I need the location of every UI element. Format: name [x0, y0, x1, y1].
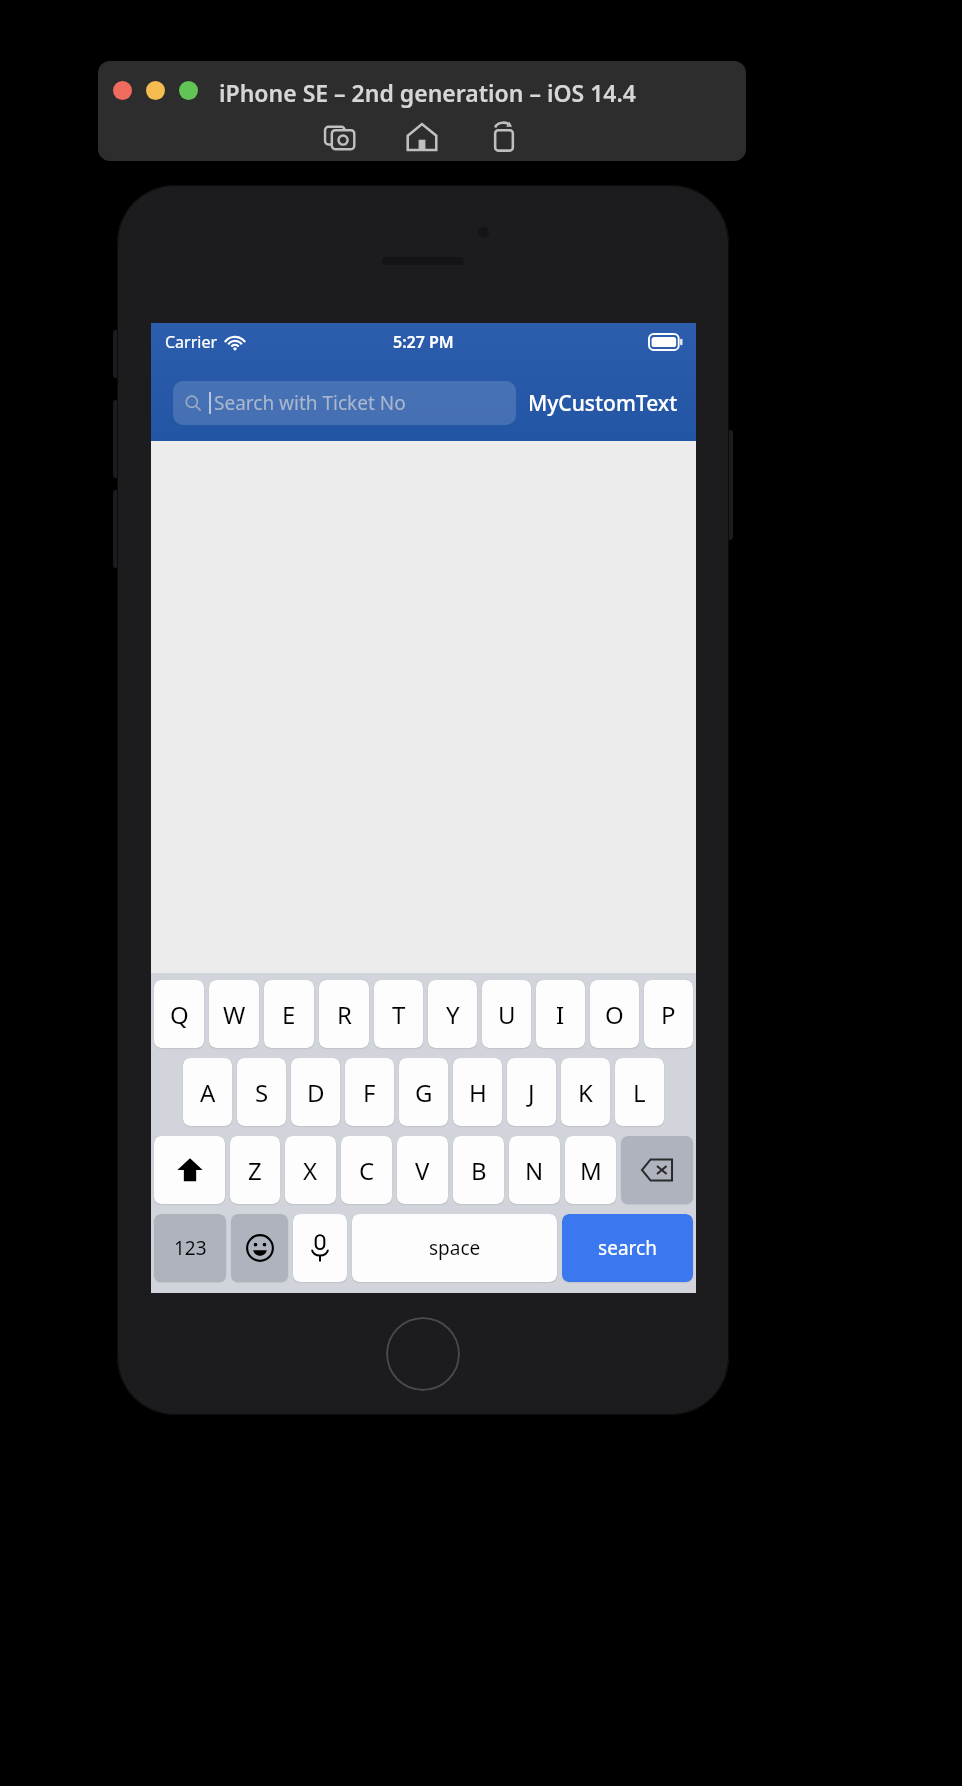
staticText: 5:27 PM — [393, 331, 454, 353]
button[interactable]: T — [374, 980, 423, 1048]
staticText: Q — [170, 998, 189, 1031]
button[interactable]: Minimize — [146, 81, 165, 100]
staticText: search — [598, 1235, 657, 1261]
button[interactable]: M — [565, 1136, 616, 1204]
staticText: S — [255, 1076, 269, 1109]
button[interactable]: Shift — [154, 1136, 225, 1204]
staticText: J — [528, 1076, 535, 1109]
button[interactable]: P — [644, 980, 693, 1048]
button[interactable]: Home — [400, 115, 444, 159]
button[interactable]: Zoom — [179, 81, 198, 100]
staticText: F — [363, 1076, 376, 1109]
button[interactable]: 123 — [154, 1214, 226, 1282]
staticText: MyCustomText — [528, 389, 678, 418]
staticText: M — [580, 1154, 602, 1187]
button[interactable]: Y — [428, 980, 477, 1048]
button[interactable]: X — [285, 1136, 336, 1204]
button[interactable]: space — [352, 1214, 557, 1282]
staticText: space — [429, 1235, 481, 1261]
staticText: P — [661, 998, 676, 1031]
staticText: E — [282, 998, 296, 1031]
button[interactable]: D — [291, 1058, 340, 1126]
staticText: X — [303, 1154, 318, 1187]
button[interactable]: A — [183, 1058, 232, 1126]
staticText: C — [359, 1154, 375, 1187]
button[interactable]: Rotate — [482, 115, 526, 159]
staticText: A — [200, 1076, 216, 1109]
staticText: L — [633, 1076, 646, 1109]
staticText: Carrier — [165, 331, 218, 353]
staticText: T — [392, 998, 406, 1031]
button[interactable]: G — [399, 1058, 448, 1126]
staticText: W — [223, 998, 246, 1031]
button[interactable]: L — [615, 1058, 664, 1126]
staticText: D — [307, 1076, 325, 1109]
button[interactable]: Search with Ticket No — [173, 381, 516, 425]
button[interactable]: Home button — [386, 1317, 460, 1391]
button[interactable]: R — [319, 980, 369, 1048]
button[interactable]: I — [536, 980, 585, 1048]
button[interactable]: J — [507, 1058, 556, 1126]
button[interactable]: W — [209, 980, 259, 1048]
staticText: iPhone SE – 2nd generation – iOS 14.4 — [219, 77, 636, 108]
staticText: U — [498, 998, 516, 1031]
button[interactable]: Q — [154, 980, 204, 1048]
button[interactable]: Close — [113, 81, 132, 100]
button[interactable]: Dictate — [293, 1214, 347, 1282]
staticText: G — [415, 1076, 433, 1109]
staticText: B — [471, 1154, 487, 1187]
button[interactable]: C — [341, 1136, 392, 1204]
button[interactable]: N — [509, 1136, 560, 1204]
staticText: Search with Ticket No — [214, 390, 406, 416]
button[interactable]: Z — [230, 1136, 280, 1204]
button[interactable]: K — [561, 1058, 610, 1126]
staticText: O — [605, 998, 624, 1031]
staticText: Y — [446, 998, 460, 1031]
staticText: I — [556, 998, 565, 1031]
button[interactable]: E — [264, 980, 314, 1048]
staticText: 123 — [174, 1235, 207, 1261]
staticText: V — [415, 1154, 430, 1187]
staticText: N — [525, 1154, 544, 1187]
button[interactable]: B — [453, 1136, 504, 1204]
staticText: Z — [248, 1154, 262, 1187]
staticText: K — [578, 1076, 593, 1109]
staticText: R — [337, 998, 352, 1031]
button[interactable]: S — [237, 1058, 286, 1126]
button[interactable]: F — [345, 1058, 394, 1126]
button[interactable]: Emoji — [231, 1214, 288, 1282]
button[interactable]: U — [482, 980, 531, 1048]
button[interactable]: O — [590, 980, 639, 1048]
button[interactable]: Delete — [621, 1136, 693, 1204]
staticText: H — [469, 1076, 487, 1109]
button[interactable]: H — [453, 1058, 502, 1126]
button[interactable]: V — [397, 1136, 448, 1204]
button[interactable]: MyCustomText — [528, 389, 678, 418]
button[interactable]: Screenshot — [318, 115, 362, 159]
button[interactable]: search — [562, 1214, 693, 1282]
